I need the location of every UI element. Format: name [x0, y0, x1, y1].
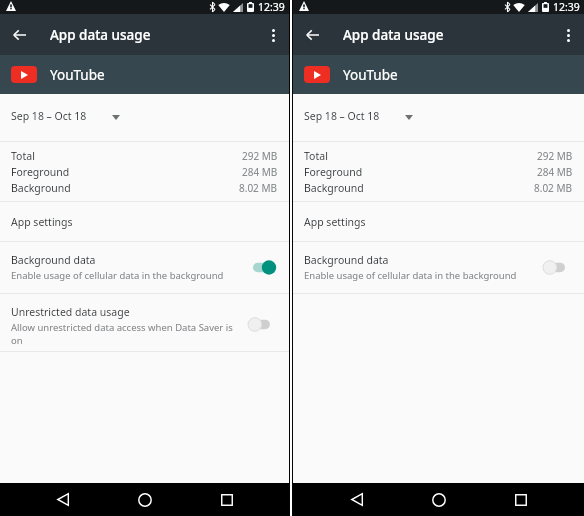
- staticText: Allow unrestricted data access when Data…: [11, 321, 233, 334]
- button[interactable]: Total: [304, 149, 573, 163]
- button[interactable]: Back: [331, 483, 383, 516]
- staticText: Background data: [11, 253, 96, 267]
- button[interactable]: Total: [11, 149, 278, 163]
- staticText: Foreground: [11, 165, 70, 179]
- staticText: Unrestricted data usage: [11, 305, 130, 319]
- button[interactable]: Off: [548, 259, 572, 276]
- button[interactable]: On: [253, 259, 277, 276]
- staticText: Total: [304, 149, 328, 163]
- staticText: 284 MB: [242, 165, 278, 179]
- staticText: on: [11, 334, 23, 347]
- staticText: Background: [11, 181, 71, 195]
- button[interactable]: YouTube: [0, 55, 289, 94]
- button[interactable]: Foreground: [11, 165, 278, 179]
- button[interactable]: Navigate up: [295, 18, 329, 52]
- staticText: Sep 18 – Oct 18: [304, 109, 380, 123]
- button[interactable]: Sep 18 – Oct 18: [0, 92, 289, 139]
- button[interactable]: App settings: [293, 202, 584, 241]
- staticText: Enable usage of cellular data in the bac…: [11, 269, 224, 282]
- staticText: Total: [11, 149, 35, 163]
- staticText: Background data: [304, 253, 389, 267]
- button[interactable]: Background data: [0, 242, 289, 293]
- staticText: App data usage: [343, 26, 444, 44]
- button[interactable]: Unrestricted data usage: [0, 301, 289, 351]
- button[interactable]: Foreground: [304, 165, 573, 179]
- staticText: 292 MB: [242, 149, 278, 163]
- staticText: Foreground: [304, 165, 363, 179]
- button[interactable]: More options: [553, 20, 583, 50]
- staticText: YouTube: [343, 66, 398, 84]
- staticText: 284 MB: [537, 165, 573, 179]
- staticText: App data usage: [50, 26, 151, 44]
- button[interactable]: Navigate up: [2, 18, 36, 52]
- staticText: 8.02 MB: [239, 181, 278, 195]
- button[interactable]: Home: [413, 483, 465, 516]
- staticText: Sep 18 – Oct 18: [11, 109, 87, 123]
- staticText: YouTube: [50, 66, 105, 84]
- staticText: 12:39: [258, 0, 285, 14]
- button[interactable]: Recent apps: [495, 483, 547, 516]
- staticText: 292 MB: [537, 149, 573, 163]
- staticText: 12:39: [553, 0, 580, 14]
- button[interactable]: Home: [119, 483, 171, 516]
- button[interactable]: Background: [304, 181, 573, 195]
- button[interactable]: YouTube: [293, 55, 584, 94]
- button[interactable]: Background data: [293, 242, 584, 293]
- button[interactable]: More options: [258, 20, 288, 50]
- button[interactable]: Sep 18 – Oct 18: [293, 92, 584, 139]
- button[interactable]: Back: [37, 483, 89, 516]
- staticText: App settings: [11, 215, 73, 229]
- staticText: App settings: [304, 215, 366, 229]
- staticText: Enable usage of cellular data in the bac…: [304, 269, 517, 282]
- staticText: 8.02 MB: [534, 181, 573, 195]
- staticText: Background: [304, 181, 364, 195]
- button[interactable]: Off: [253, 316, 277, 333]
- button[interactable]: Recent apps: [201, 483, 253, 516]
- button[interactable]: Background: [11, 181, 278, 195]
- button[interactable]: App settings: [0, 202, 289, 241]
